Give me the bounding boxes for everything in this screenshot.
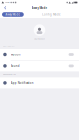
staticText: HOW TO NOTIFY YOU: [3, 73, 16, 75]
button[interactable]: Back: [2, 5, 9, 11]
staticText: WHAT TO DETECT: [3, 45, 15, 47]
staticText: Sound: [11, 64, 20, 68]
staticText: App Notification: [11, 81, 34, 85]
staticText: 1.0 KB/s: [5, 2, 10, 3]
button[interactable]: Config Mode: [42, 12, 61, 17]
button[interactable]: Motion: [0, 49, 79, 60]
staticText: Config Mode: [42, 13, 61, 16]
button[interactable]: App Notification: [0, 77, 79, 88]
button[interactable]: Sound: [0, 60, 79, 71]
staticText: Away mode is on: [34, 38, 45, 40]
staticText: Away Mode: [5, 13, 20, 16]
staticText: Away Mode: [31, 6, 47, 10]
button[interactable]: Away Mode: [2, 12, 24, 17]
staticText: Motion: [11, 53, 21, 56]
